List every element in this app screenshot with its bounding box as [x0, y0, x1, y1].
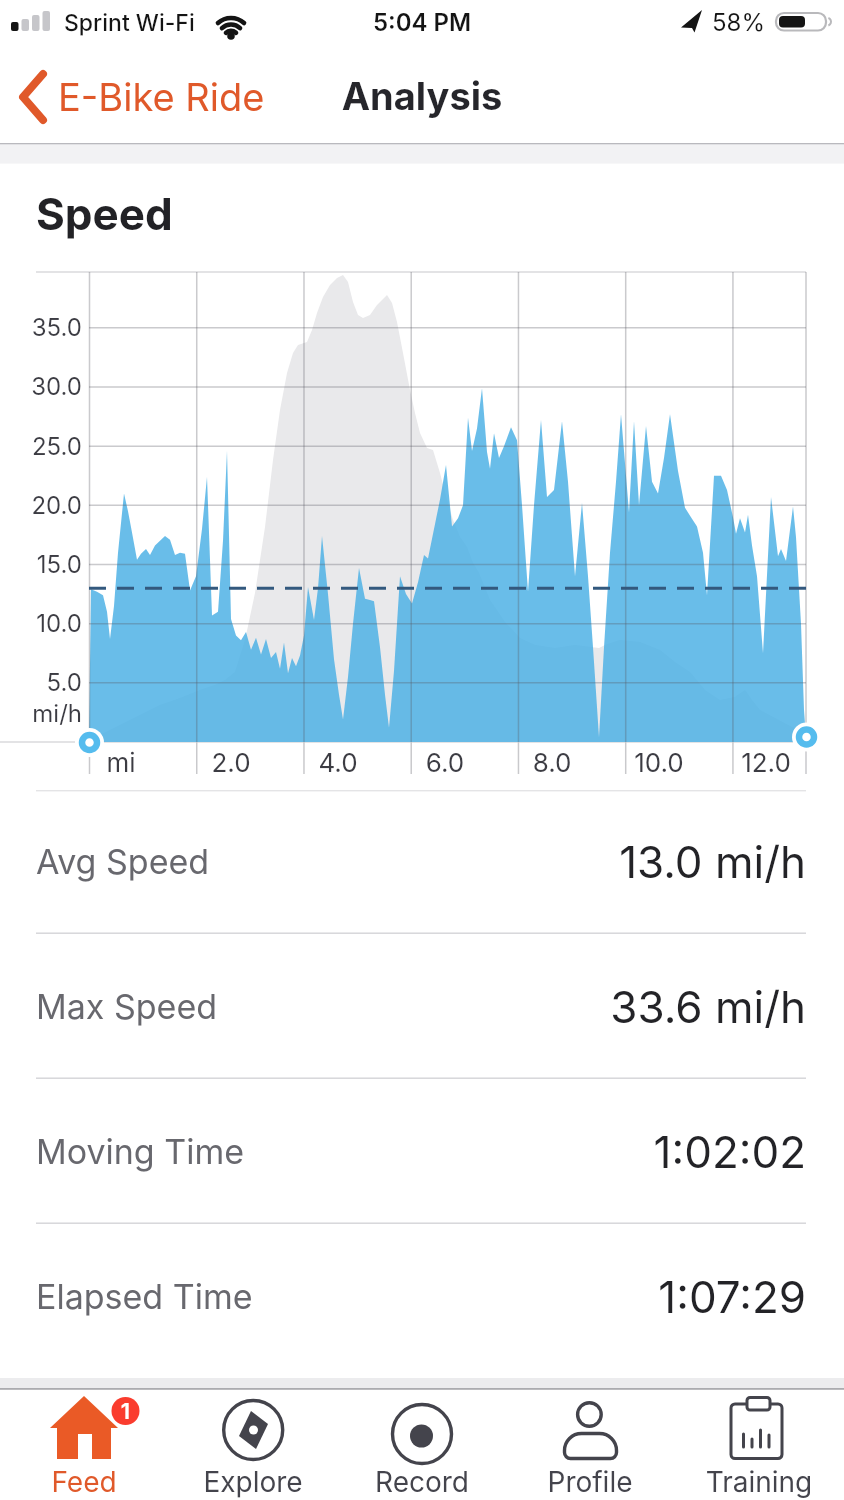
staticText: 1 [117, 1398, 134, 1425]
staticText: Profile [506, 1465, 674, 1499]
staticText: Speed [36, 187, 173, 240]
staticText: 1:07:29 [406, 1270, 806, 1323]
staticText: Elapsed Time [36, 1276, 253, 1317]
staticText: 30.0 [10, 372, 82, 401]
staticText: 5.0 [10, 668, 82, 697]
staticText: 6.0 [405, 747, 485, 778]
staticText: 33.6 mi/h [406, 980, 806, 1033]
button[interactable] [676, 1390, 844, 1500]
button[interactable] [338, 1390, 506, 1500]
button[interactable]: E-Bike Ride [10, 66, 260, 128]
staticText: 4.0 [298, 747, 378, 778]
staticText: 2.0 [191, 747, 271, 778]
button[interactable] [0, 1097, 844, 1207]
staticText: 10.0 [10, 609, 82, 638]
staticText: Max Speed [36, 986, 218, 1027]
staticText: 13.0 mi/h [406, 835, 806, 888]
button[interactable] [0, 1390, 168, 1500]
staticText: Sprint Wi-Fi [64, 9, 195, 37]
staticText: mi [81, 747, 161, 778]
staticText: 58% [712, 8, 766, 37]
staticText: 20.0 [10, 491, 82, 520]
button[interactable] [0, 807, 844, 917]
staticText: Record [338, 1465, 506, 1499]
button[interactable] [169, 1390, 337, 1500]
staticText: Training [675, 1465, 843, 1499]
staticText: Feed [0, 1465, 168, 1499]
staticText: 8.0 [512, 747, 592, 778]
staticText: 35.0 [10, 313, 82, 342]
button[interactable] [0, 1242, 844, 1352]
staticText: Avg Speed [36, 841, 210, 882]
staticText: 12.0 [726, 747, 806, 778]
staticText: Analysis [0, 73, 844, 119]
staticText: E-Bike Ride [58, 74, 265, 120]
staticText: 25.0 [10, 432, 82, 461]
staticText: 15.0 [10, 550, 82, 579]
staticText: 5:04 PM [342, 8, 502, 37]
staticText: Moving Time [36, 1131, 245, 1172]
staticText: mi/h [10, 699, 82, 728]
button[interactable] [507, 1390, 675, 1500]
staticText: 10.0 [619, 747, 699, 778]
staticText: 1:02:02 [406, 1125, 806, 1178]
staticText: Explore [169, 1465, 337, 1499]
button[interactable] [0, 952, 844, 1062]
